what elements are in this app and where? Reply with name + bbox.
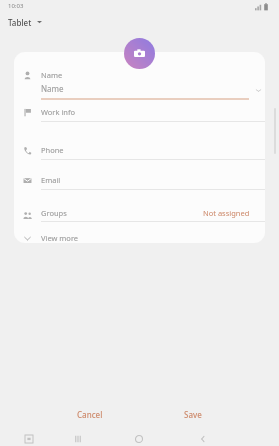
button[interactable]: Recent apps bbox=[67, 429, 89, 446]
button[interactable]: Name bbox=[41, 83, 265, 100]
staticText: Cancel bbox=[77, 409, 103, 420]
button[interactable]: Save bbox=[172, 405, 214, 424]
staticText: View more bbox=[41, 233, 79, 243]
staticText: Name bbox=[41, 70, 63, 80]
staticText: 10:03 bbox=[8, 2, 24, 10]
staticText: Name bbox=[41, 83, 64, 94]
button[interactable]: Hide keyboard bbox=[18, 429, 40, 446]
staticText: Phone bbox=[41, 145, 64, 155]
button[interactable]: View more bbox=[14, 230, 265, 243]
button[interactable]: Phone bbox=[41, 144, 265, 160]
button[interactable]: Back bbox=[192, 429, 214, 446]
staticText: Save bbox=[184, 409, 202, 420]
staticText: Not assigned bbox=[203, 208, 250, 218]
button[interactable]: Groups bbox=[41, 207, 265, 222]
button[interactable]: Tablet bbox=[0, 13, 50, 31]
staticText: Work info bbox=[41, 107, 76, 117]
button[interactable]: Email bbox=[41, 174, 265, 190]
staticText: Tablet bbox=[8, 17, 32, 28]
other: Expand name bbox=[255, 88, 262, 93]
button[interactable]: Cancel bbox=[66, 405, 114, 424]
button[interactable]: Home bbox=[128, 429, 150, 446]
button[interactable]: Change photo bbox=[124, 38, 155, 69]
staticText: Email bbox=[41, 175, 61, 185]
staticText: Groups bbox=[41, 208, 67, 218]
button[interactable]: Work info bbox=[41, 106, 265, 122]
